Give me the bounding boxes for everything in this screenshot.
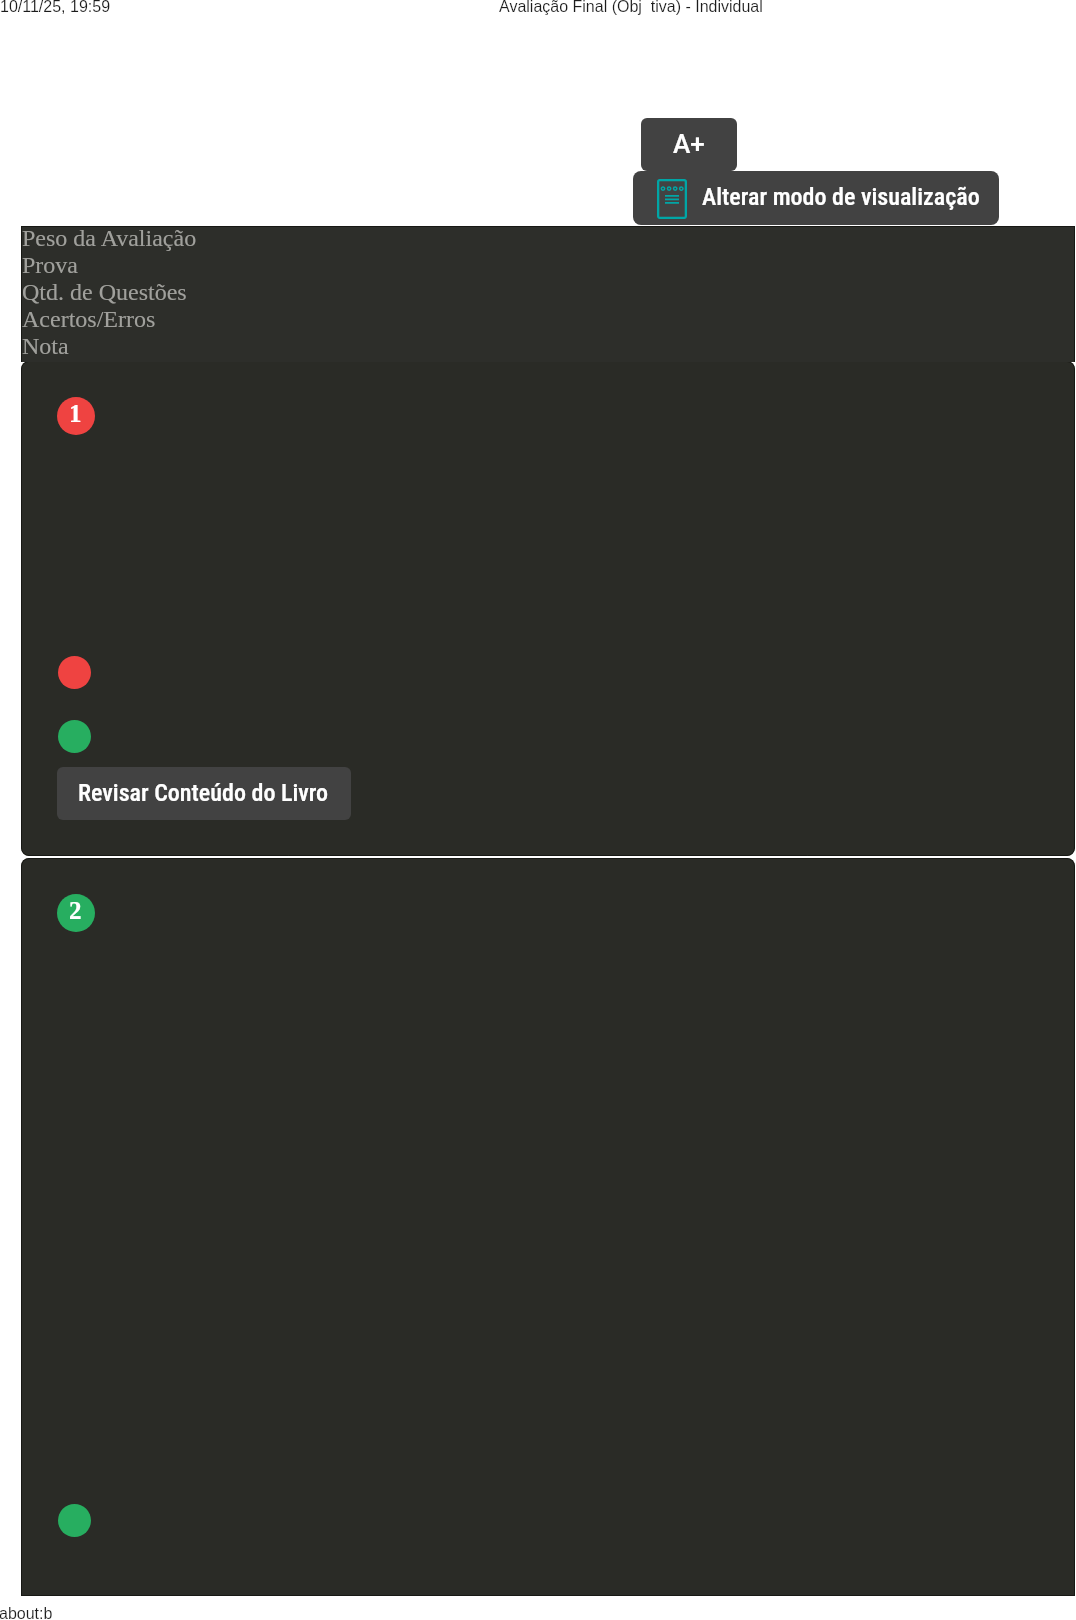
button[interactable]: Revisar Conteúdo do Livro	[57, 767, 351, 820]
staticText: 10/11/25, 19:59	[0, 0, 111, 16]
staticText: Prova	[22, 252, 78, 279]
staticText: 1	[69, 400, 82, 428]
staticText: Revisar Conteúdo do Livro	[78, 779, 329, 807]
button[interactable]: Alterar modo de visualização	[633, 171, 999, 225]
staticText: Acertos/Erros	[22, 306, 156, 333]
staticText: Nota	[22, 333, 69, 360]
staticText: Peso da Avaliação	[22, 225, 197, 252]
staticText: A+	[673, 129, 705, 159]
staticText: 2	[69, 897, 82, 925]
staticText: Avaliação Final (Obj tiva) - Individual	[499, 0, 763, 16]
button[interactable]: Aumentar tamanho do texto	[641, 118, 737, 171]
staticText: about:b	[0, 1605, 53, 1620]
staticText: Qtd. de Questões	[22, 279, 187, 306]
staticText: Alterar modo de visualização	[702, 183, 980, 211]
